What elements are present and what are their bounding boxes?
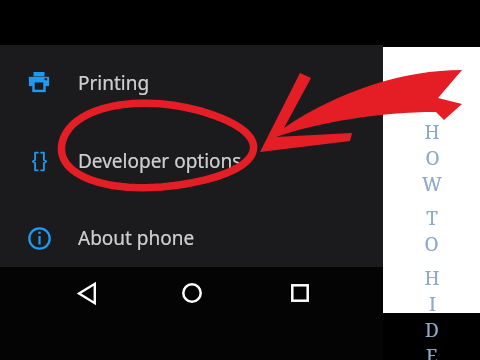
staticText: H [424,265,440,291]
button[interactable]: Back [58,270,118,316]
button[interactable]: Printing [0,54,383,112]
staticText: Developer options [78,148,242,174]
staticText: W [422,171,442,197]
button[interactable]: Home [162,270,222,316]
button[interactable]: About phone [0,209,383,267]
button[interactable]: Developer options [0,132,383,190]
staticText: O [425,145,440,171]
staticText: I [429,291,436,317]
staticText: E [426,343,438,360]
staticText: O [424,231,439,257]
staticText: Printing [78,70,150,96]
staticText: D [425,317,439,343]
button[interactable]: Recent apps [270,270,330,316]
staticText: T [426,205,438,231]
staticText: H [424,119,440,145]
staticText: About phone [78,225,195,251]
